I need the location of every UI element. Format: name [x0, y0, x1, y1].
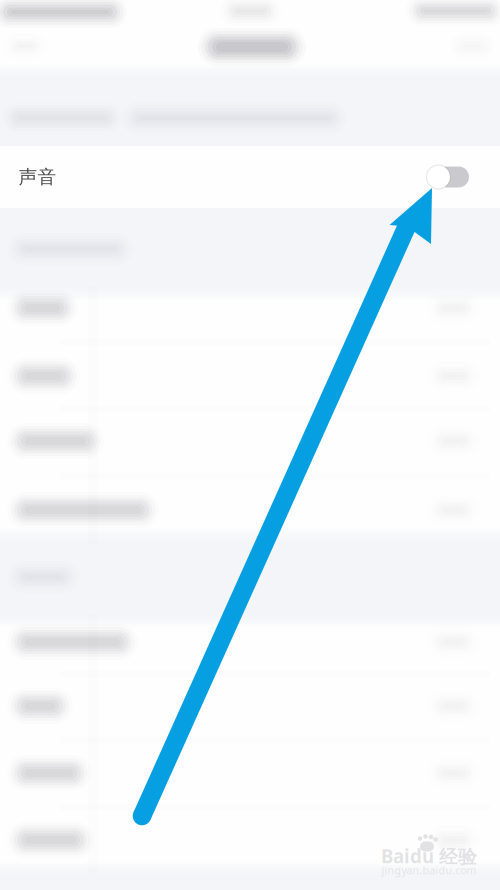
button[interactable] — [0, 408, 500, 474]
button[interactable] — [0, 275, 500, 341]
staticText: jingyan.baidu.com — [381, 863, 476, 877]
button[interactable] — [0, 477, 500, 543]
button[interactable] — [0, 807, 500, 873]
button[interactable] — [0, 609, 500, 675]
button[interactable] — [0, 740, 500, 806]
button[interactable] — [0, 343, 500, 409]
button[interactable]: 声音 — [0, 0, 500, 890]
staticText: Baidu 经验 — [381, 844, 477, 868]
staticText: 声音 — [18, 165, 56, 188]
button[interactable] — [0, 673, 500, 739]
